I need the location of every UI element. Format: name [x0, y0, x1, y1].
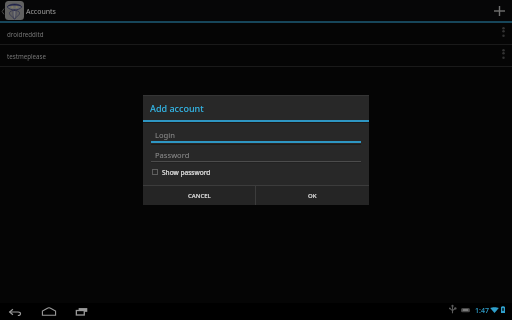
staticText: testmeplease: [7, 52, 47, 60]
button[interactable]: droidredditd: [0, 23, 512, 44]
staticText: CANCEL: [188, 192, 211, 200]
staticText: Show password: [162, 168, 211, 177]
button[interactable]: Show password: [152, 166, 211, 178]
staticText: Login: [155, 130, 175, 140]
button[interactable]: Recent apps: [65, 303, 98, 320]
staticText: Accounts: [26, 7, 56, 17]
button[interactable]: OK: [256, 186, 369, 205]
button[interactable]: More options: [495, 45, 512, 66]
button[interactable]: Add account: [487, 0, 512, 21]
staticText: droidredditd: [7, 30, 44, 38]
button[interactable]: Back: [0, 303, 32, 320]
button[interactable]: More options: [495, 23, 512, 44]
button[interactable]: CANCEL: [143, 186, 255, 205]
staticText: OK: [308, 192, 317, 200]
button[interactable]: Accounts: [0, 0, 56, 21]
staticText: Password: [155, 150, 190, 160]
staticText: 1:47: [475, 306, 489, 316]
button[interactable]: testmeplease: [0, 45, 512, 66]
button[interactable]: Login: [151, 123, 361, 143]
button[interactable]: Password: [151, 143, 361, 162]
button[interactable]: Home: [32, 303, 65, 320]
staticText: Add account: [150, 102, 204, 114]
